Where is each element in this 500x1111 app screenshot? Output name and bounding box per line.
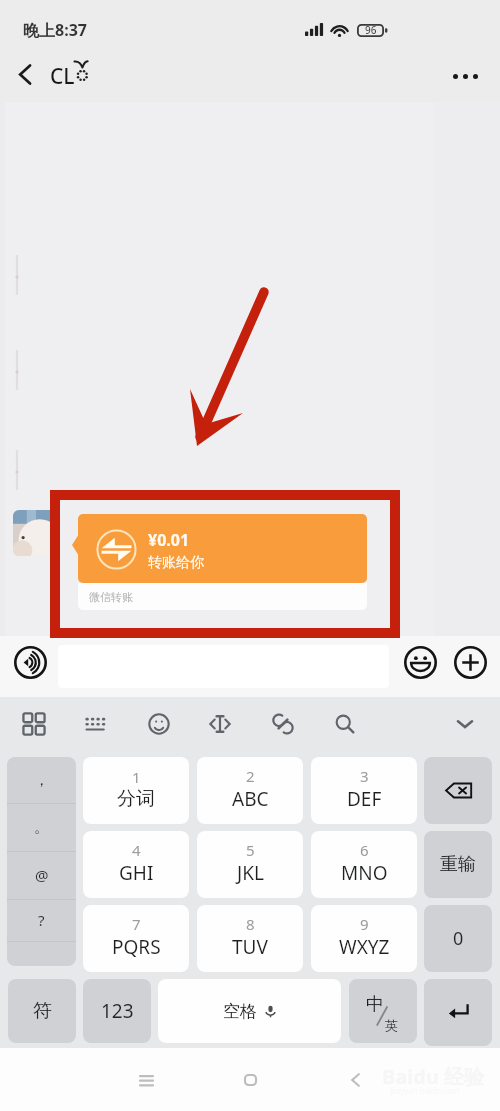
button[interactable]: 符 — [8, 979, 76, 1043]
button[interactable]: Search — [326, 705, 364, 743]
staticText: 6 — [360, 840, 369, 860]
button[interactable]: Recent apps — [123, 1057, 170, 1104]
button[interactable]: Enter — [424, 979, 492, 1043]
staticText: ， — [34, 771, 49, 790]
staticText: 1 — [132, 767, 141, 787]
button[interactable]: 1 — [83, 757, 189, 824]
button[interactable]: 7 — [83, 905, 189, 972]
button[interactable]: 8 — [197, 905, 303, 972]
staticText: 晚上8:37 — [23, 19, 87, 41]
button[interactable]: 6 — [311, 831, 417, 898]
staticText: PQRS — [112, 934, 161, 960]
button[interactable]: Back — [4, 53, 46, 95]
staticText: DEF — [347, 786, 382, 812]
button[interactable]: Emoji — [140, 705, 178, 743]
staticText: 符 — [33, 999, 52, 1023]
staticText: 5 — [246, 840, 255, 860]
button[interactable]: Enter — [424, 979, 492, 1046]
staticText: 中 — [366, 993, 384, 1016]
staticText: ABC — [232, 786, 269, 812]
button[interactable]: Emoji — [402, 644, 438, 680]
staticText: 3 — [360, 766, 369, 786]
button[interactable]: Move cursor — [201, 705, 239, 743]
button[interactable]: Clipboard — [264, 705, 302, 743]
button[interactable]: 重输 — [424, 831, 492, 898]
button[interactable]: @ — [7, 851, 76, 899]
staticText: 4 — [132, 840, 141, 860]
button[interactable]: More symbols — [7, 941, 76, 966]
staticText: 8 — [246, 914, 255, 934]
button[interactable]: Chinese / English — [349, 979, 417, 1043]
staticText: Baidu 经验 — [382, 1063, 485, 1090]
staticText: 96 — [365, 23, 377, 37]
staticText: CL — [50, 62, 75, 91]
staticText: 。 — [34, 818, 49, 837]
staticText: MNO — [341, 860, 388, 886]
button[interactable]: ¥0.01 — [72, 514, 367, 610]
button[interactable]: Voice input — [12, 644, 48, 680]
button[interactable]: Apps — [15, 705, 53, 743]
staticText: ? — [38, 910, 45, 930]
staticText: 9 — [360, 914, 369, 934]
button[interactable]: Back — [332, 1056, 379, 1103]
button[interactable]: More options — [442, 53, 488, 99]
button[interactable]: 。 — [7, 803, 76, 851]
button[interactable]: ? — [7, 899, 76, 941]
button[interactable]: Backspace — [424, 757, 492, 824]
button[interactable]: 5 — [197, 831, 303, 898]
staticText: 123 — [101, 998, 134, 1024]
staticText: 微信转账 — [89, 590, 133, 604]
button[interactable]: Keyboard layout — [77, 705, 115, 743]
staticText: 转账给你 — [148, 554, 204, 572]
staticText: TUV — [232, 934, 268, 960]
staticText: 英 — [385, 1017, 398, 1033]
button[interactable]: Avatar — [13, 510, 59, 556]
staticText: 空格 — [223, 1001, 257, 1022]
staticText: 0 — [453, 926, 464, 951]
staticText: 重输 — [440, 853, 476, 876]
button[interactable]: ， — [7, 757, 76, 803]
button[interactable]: 0 — [424, 905, 492, 972]
staticText: @ — [35, 865, 49, 885]
button[interactable]: 123 — [83, 979, 151, 1043]
staticText: ¥0.01 — [148, 529, 190, 551]
button[interactable]: 空格 — [158, 979, 341, 1043]
staticText: 7 — [132, 914, 141, 934]
staticText: GHI — [119, 860, 154, 886]
button[interactable]: Add attachment — [452, 644, 488, 680]
staticText: WXYZ — [339, 934, 390, 960]
button[interactable]: 2 — [197, 757, 303, 824]
button[interactable]: Hide keyboard — [446, 705, 484, 743]
staticText: 分词 — [117, 787, 155, 811]
staticText: JKL — [237, 860, 264, 886]
button[interactable]: Home — [227, 1056, 274, 1103]
staticText: 2 — [246, 766, 255, 786]
button[interactable]: 4 — [83, 831, 189, 898]
button[interactable]: 3 — [311, 757, 417, 824]
button[interactable]: 9 — [311, 905, 417, 972]
